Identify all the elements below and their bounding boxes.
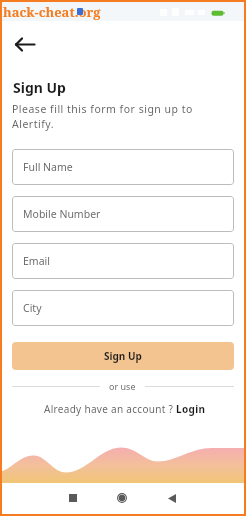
staticText: Sign Up <box>104 349 142 363</box>
staticText: hack-cheat.org <box>3 3 101 21</box>
staticText: Mobile Number <box>23 207 101 221</box>
button[interactable]: Back <box>159 485 185 511</box>
button[interactable]: Home <box>109 485 135 511</box>
button[interactable]: Recent apps <box>60 485 86 511</box>
button[interactable]: Back <box>11 30 39 58</box>
staticText: Sign Up <box>13 78 66 97</box>
staticText: Full Name <box>23 160 73 174</box>
staticText: City <box>23 301 42 315</box>
button[interactable]: Already have an account ? Login <box>14 401 236 417</box>
staticText: Please fill this form for sign up to Ale… <box>12 102 208 131</box>
staticText: Already have an account ? Login <box>44 402 206 416</box>
staticText: Email <box>23 254 50 268</box>
button[interactable]: Email <box>12 243 234 279</box>
button[interactable]: Sign Up <box>12 342 234 370</box>
button[interactable]: City <box>12 290 234 326</box>
button[interactable]: Mobile Number <box>12 196 234 232</box>
staticText: or use <box>109 380 136 392</box>
button[interactable]: Full Name <box>12 149 234 185</box>
